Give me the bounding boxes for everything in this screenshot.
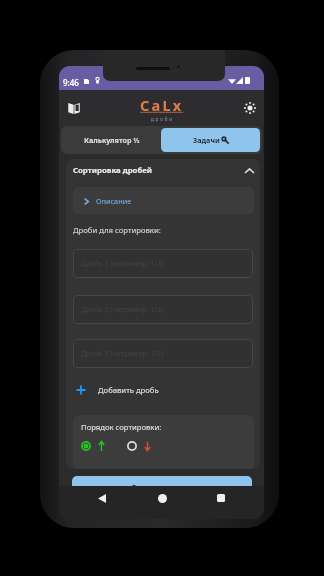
button[interactable]: Дробь 1 (например, 1/2) (73, 249, 253, 278)
button[interactable]: Недавние (212, 489, 230, 507)
staticText: Описание (96, 196, 132, 206)
button[interactable] (81, 439, 127, 453)
staticText: Задачи (193, 135, 222, 145)
button[interactable]: Добавить дробь (73, 381, 254, 399)
staticText: Дроби для сортировки: (73, 225, 161, 235)
button[interactable]: Дробь 3 (например, 1/2) (73, 339, 253, 368)
staticText: Отсортировать (131, 482, 193, 493)
button[interactable]: Описание (73, 187, 254, 214)
button[interactable] (127, 439, 173, 453)
button[interactable]: Калькулятор ½ (63, 128, 161, 152)
staticText: 9:46 (63, 77, 79, 88)
button[interactable]: Домой (153, 489, 171, 507)
button[interactable]: Задачи (161, 128, 260, 152)
staticText: Калькулятор ½ (84, 135, 140, 145)
staticText: д р о б и (151, 116, 173, 122)
button[interactable]: Сменить тему (240, 98, 260, 118)
button[interactable]: Дробь 2 (например, 1/2) (73, 295, 253, 324)
staticText: CaLx (140, 95, 184, 115)
button[interactable]: Назад (93, 489, 111, 507)
button[interactable]: Справочник (64, 98, 84, 118)
staticText: Порядок сортировки: (81, 422, 162, 432)
staticText: Дробь 2 (например, 1/2) (81, 305, 164, 315)
staticText: Дробь 3 (например, 1/2) (81, 349, 164, 359)
staticText: Дробь 1 (например, 1/2) (81, 259, 164, 269)
button[interactable]: Отсортировать (72, 476, 252, 498)
staticText: Сортировка дробей (73, 165, 153, 176)
staticText: Добавить дробь (98, 385, 159, 395)
button[interactable]: Сортировка дробей (73, 159, 254, 181)
